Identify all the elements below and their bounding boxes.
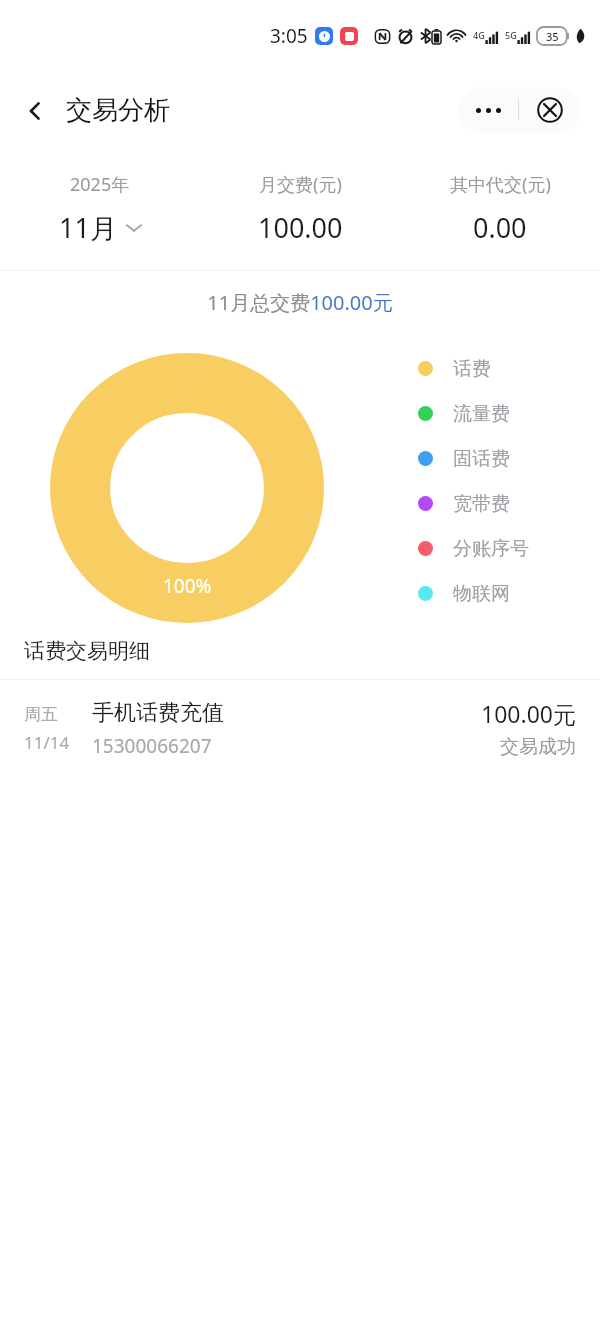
staticText: 11/14 (24, 731, 70, 754)
button[interactable]: 话费 (418, 346, 491, 391)
staticText: 月交费(元) (259, 172, 342, 197)
staticText: 固话费 (453, 447, 510, 471)
button[interactable]: 流量费 (418, 391, 510, 436)
staticText: 交易成功 (500, 735, 576, 759)
staticText: 分账序号 (453, 537, 529, 561)
button[interactable]: 固话费 (418, 436, 510, 481)
staticText: 5G (505, 29, 517, 41)
staticText: 其中代交(元) (450, 172, 551, 197)
staticText: 交易分析 (66, 94, 170, 127)
button[interactable]: 话费 100% (50, 353, 324, 623)
staticText: 11月 (59, 209, 117, 246)
staticText: 35 (546, 29, 559, 44)
staticText: 100.00 (258, 209, 343, 246)
staticText: 100% (163, 573, 212, 599)
staticText: 流量费 (453, 402, 510, 426)
staticText: 0.00 (473, 209, 527, 246)
staticText: 宽带费 (453, 492, 510, 516)
button[interactable]: 周五 (0, 680, 600, 777)
staticText: 2025年 (70, 172, 130, 197)
button[interactable]: 物联网 (418, 571, 510, 616)
staticText: 手机话费充值 (92, 699, 224, 727)
button[interactable]: 2025年 (0, 172, 200, 246)
button[interactable]: More options (458, 87, 518, 133)
other: Back (22, 98, 48, 124)
staticText: 物联网 (453, 582, 510, 606)
staticText: 100.00元 (481, 698, 576, 729)
staticText: 15300066207 (92, 733, 212, 759)
staticText: 11月总交费100.00元 (207, 289, 393, 316)
staticText: 3:05 (270, 23, 308, 49)
button[interactable]: Close (519, 87, 580, 133)
staticText: 周五 (24, 704, 58, 725)
staticText: 话费 (453, 357, 491, 381)
staticText: 4G (473, 29, 485, 41)
staticText: 话费交易明细 (24, 638, 150, 664)
button[interactable]: 分账序号 (418, 526, 529, 571)
button[interactable]: Back (0, 86, 180, 135)
button[interactable]: 宽带费 (418, 481, 510, 526)
